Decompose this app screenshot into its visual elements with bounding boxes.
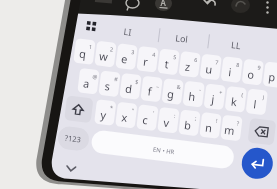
button[interactable]: Phone keyboard [0,0,277,189]
